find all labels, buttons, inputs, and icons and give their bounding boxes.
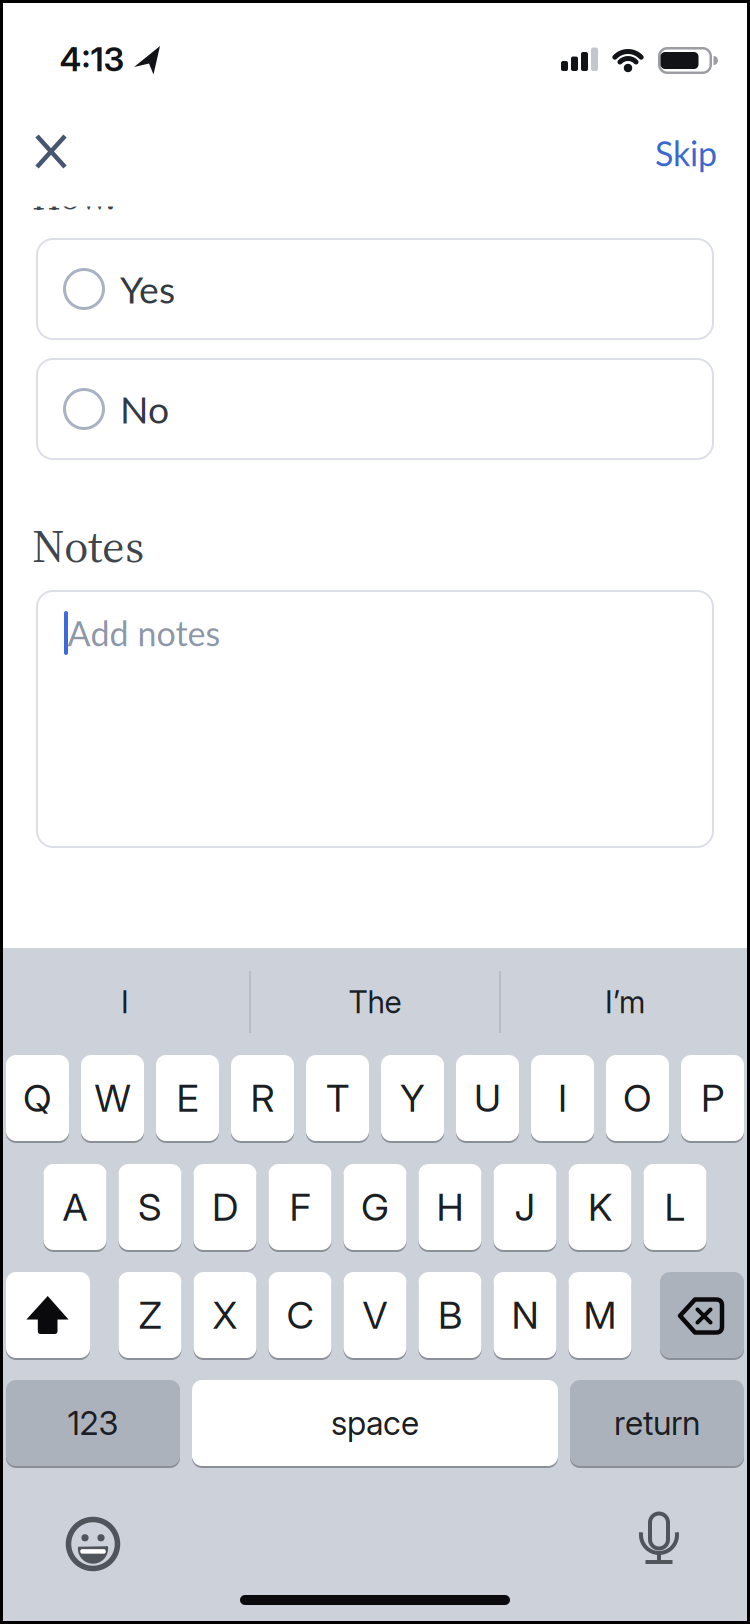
staticText: B [438, 1292, 462, 1338]
staticText: Yes [120, 267, 175, 311]
button[interactable]: K [568, 1164, 631, 1250]
button[interactable]: J [493, 1164, 556, 1250]
button[interactable]: E [156, 1055, 219, 1141]
button[interactable]: The [255, 957, 495, 1047]
button[interactable]: Skip [655, 133, 717, 173]
button[interactable]: Close [28, 127, 74, 176]
staticText: C [286, 1292, 313, 1338]
staticText: W [94, 1075, 130, 1121]
button[interactable]: No [36, 358, 714, 460]
button[interactable]: return [570, 1380, 744, 1466]
staticText: D [212, 1184, 238, 1230]
staticText: G [361, 1184, 389, 1230]
button[interactable]: I’m [505, 957, 745, 1047]
button[interactable]: D [193, 1164, 256, 1250]
button[interactable]: G [343, 1164, 406, 1250]
button[interactable]: F [268, 1164, 331, 1250]
staticText: Z [138, 1292, 161, 1338]
button[interactable]: Add notes [36, 590, 714, 848]
staticText: N [511, 1292, 538, 1338]
staticText: A [62, 1184, 87, 1230]
staticText: S [138, 1184, 162, 1230]
button[interactable]: W [81, 1055, 144, 1141]
button[interactable]: X [193, 1272, 256, 1358]
staticText: V [362, 1292, 387, 1338]
button[interactable]: Shift [6, 1272, 90, 1358]
button[interactable]: space [192, 1380, 558, 1466]
staticText: No [120, 387, 169, 431]
staticText: O [623, 1075, 652, 1121]
button[interactable]: Emoji [63, 1514, 123, 1574]
staticText: X [212, 1292, 237, 1338]
staticText: Add notes [67, 613, 220, 653]
button[interactable]: I [5, 957, 245, 1047]
staticText: Notes [32, 514, 144, 578]
staticText: L [664, 1184, 685, 1230]
staticText: M [583, 1292, 616, 1338]
button[interactable]: O [606, 1055, 669, 1141]
button[interactable]: Q [6, 1055, 69, 1141]
button[interactable]: P [681, 1055, 744, 1141]
button[interactable]: V [343, 1272, 406, 1358]
button[interactable]: N [493, 1272, 556, 1358]
staticText: U [474, 1075, 501, 1121]
staticText: P [701, 1075, 724, 1121]
staticText: Y [400, 1075, 425, 1121]
button[interactable]: Delete [660, 1272, 744, 1358]
staticText: space [331, 1403, 419, 1443]
button[interactable]: H [418, 1164, 481, 1250]
button[interactable]: A [43, 1164, 106, 1250]
button[interactable]: B [418, 1272, 481, 1358]
staticText: return [614, 1403, 700, 1443]
staticText: I [121, 983, 129, 1020]
staticText: T [326, 1075, 349, 1121]
staticText: H [436, 1184, 463, 1230]
button[interactable]: I [531, 1055, 594, 1141]
staticText: How. [32, 171, 116, 222]
staticText: The [348, 983, 401, 1020]
button[interactable]: Dictate [631, 1508, 687, 1572]
staticText: F [289, 1184, 310, 1230]
staticText: Q [23, 1075, 52, 1121]
button[interactable]: T [306, 1055, 369, 1141]
staticText: 4:13 [59, 39, 124, 79]
button[interactable]: U [456, 1055, 519, 1141]
staticText: 123 [67, 1403, 118, 1443]
staticText: I’m [605, 983, 645, 1020]
staticText: Skip [655, 133, 717, 173]
button[interactable]: M [568, 1272, 631, 1358]
button[interactable]: 123 [6, 1380, 180, 1466]
staticText: R [250, 1075, 274, 1121]
button[interactable]: Y [381, 1055, 444, 1141]
button[interactable]: L [643, 1164, 706, 1250]
button[interactable]: Z [118, 1272, 181, 1358]
button[interactable]: Yes [36, 238, 714, 340]
button[interactable]: S [118, 1164, 181, 1250]
button[interactable]: C [268, 1272, 331, 1358]
staticText: J [514, 1184, 535, 1230]
staticText: K [588, 1184, 612, 1230]
staticText: I [558, 1075, 567, 1121]
staticText: E [176, 1075, 198, 1121]
button[interactable]: R [231, 1055, 294, 1141]
